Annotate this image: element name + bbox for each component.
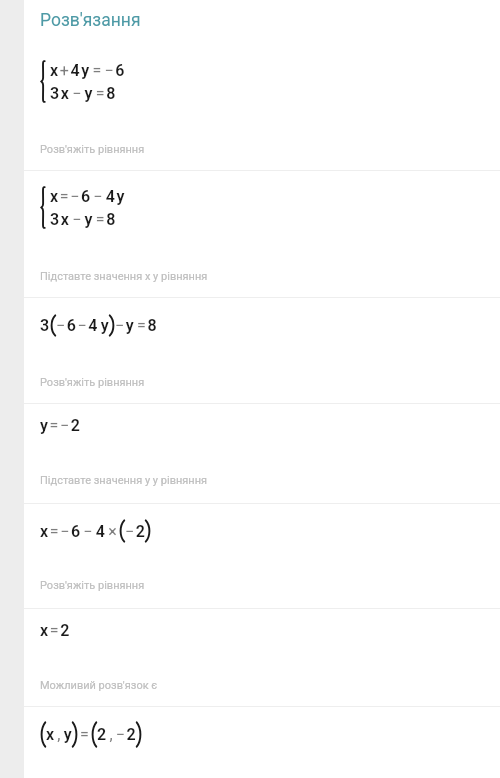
button[interactable]: y = − 2 xyxy=(40,410,80,440)
staticText: 3 xyxy=(40,316,50,335)
button[interactable]: x = − 6 − 4 × xyxy=(40,514,151,548)
button[interactable]: Розв'язання xyxy=(40,5,141,35)
button[interactable]: x = 2 xyxy=(40,615,70,645)
button[interactable]: x + 4 y = − 6 xyxy=(40,58,115,104)
button[interactable]: x = − 6 − 4 y xyxy=(40,184,115,230)
staticText: Можливий розв'язок є xyxy=(40,679,158,697)
staticText: Підставте значення y у рівняння xyxy=(40,474,208,492)
staticText: Розв'язання xyxy=(40,10,141,31)
staticText: 2 , − 2 xyxy=(97,725,136,744)
staticText: Розв'яжіть рівняння xyxy=(40,579,145,597)
staticText: x = 2 xyxy=(40,621,70,640)
button[interactable]: 3 xyxy=(40,310,157,340)
staticText: 3 x − y = 8 xyxy=(50,84,116,103)
staticText: x , y xyxy=(46,725,72,744)
button[interactable]: x , y xyxy=(40,717,142,751)
staticText: = xyxy=(80,725,89,744)
staticText: − 2 xyxy=(125,522,145,541)
staticText: x = − 6 − 4 × xyxy=(40,522,119,541)
staticText: x = − 6 − 4 y xyxy=(50,187,125,206)
staticText: Розв'яжіть рівняння xyxy=(40,376,145,394)
staticText: y = − 2 xyxy=(40,416,80,435)
staticText: 3 x − y = 8 xyxy=(50,210,116,229)
staticText: Підставте значення x у рівняння xyxy=(40,270,208,288)
staticText: x + 4 y = − 6 xyxy=(50,61,125,80)
staticText: Розв'яжіть рівняння xyxy=(40,143,145,161)
staticText: − y = 8 xyxy=(115,316,157,335)
staticText: − 6 − 4 y xyxy=(56,316,109,335)
